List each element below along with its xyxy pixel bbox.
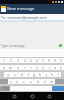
button[interactable]: u — [40, 65, 46, 70]
button[interactable]: Recent apps — [46, 93, 53, 100]
button[interactable]: 6 — [34, 58, 40, 63]
button[interactable]: e — [14, 65, 21, 70]
button[interactable]: a — [4, 72, 11, 77]
staticText: 6 — [36, 59, 38, 63]
staticText: m — [50, 80, 53, 84]
button[interactable]: h — [37, 72, 43, 77]
staticText: r — [24, 66, 26, 70]
button[interactable]: n — [41, 79, 48, 84]
button[interactable]: z — [8, 79, 14, 84]
staticText: a — [7, 73, 9, 77]
staticText: h — [39, 73, 41, 77]
staticText: i — [49, 66, 50, 70]
button[interactable]: k — [49, 72, 55, 77]
staticText: o — [54, 66, 56, 70]
button[interactable]: , — [10, 86, 16, 91]
button[interactable]: 1 — [0, 58, 7, 63]
button[interactable]: 5 — [28, 58, 34, 63]
staticText: y — [36, 66, 38, 70]
button[interactable]: s — [11, 72, 18, 77]
button[interactable]: Home — [29, 93, 36, 100]
button[interactable]: Send — [59, 44, 62, 47]
staticText: . — [49, 87, 50, 91]
button[interactable]: o — [52, 65, 58, 70]
button[interactable]: 4 — [21, 58, 28, 63]
staticText: 5 — [30, 59, 32, 63]
staticText: q — [3, 66, 5, 70]
button[interactable]: y — [34, 65, 40, 70]
button[interactable]: j — [43, 72, 49, 77]
staticText: u — [42, 66, 44, 70]
button[interactable]: f — [25, 72, 31, 77]
staticText: New message — [7, 6, 35, 12]
button[interactable]: d — [18, 72, 25, 77]
staticText: l — [58, 73, 59, 77]
button[interactable]: t — [28, 65, 34, 70]
staticText: 4 — [24, 59, 26, 63]
button[interactable]: 8 — [46, 58, 52, 63]
staticText: w — [9, 66, 12, 70]
staticText: n — [44, 80, 46, 84]
staticText: t — [30, 66, 32, 70]
staticText: z — [10, 80, 12, 84]
staticText: d — [21, 73, 23, 77]
button[interactable]: 9 — [52, 58, 58, 63]
button[interactable]: ?123 — [0, 86, 10, 91]
button[interactable]: v — [27, 79, 34, 84]
staticText: c — [23, 80, 25, 84]
staticText: e — [17, 66, 19, 70]
staticText: To: someone@example.com — [1, 15, 47, 20]
button[interactable]: 7 — [40, 58, 46, 63]
button[interactable]: w — [7, 65, 14, 70]
staticText: b — [37, 80, 39, 84]
staticText: 2 — [10, 59, 12, 63]
staticText: x — [16, 80, 18, 84]
staticText: 8 — [48, 59, 50, 63]
staticText: j — [46, 73, 47, 77]
staticText: 0 — [60, 59, 62, 63]
button[interactable]: x — [14, 79, 20, 84]
staticText: p — [60, 66, 62, 70]
staticText: 7 — [42, 59, 44, 63]
button[interactable]: 3 — [14, 58, 21, 63]
button[interactable]: . — [46, 86, 52, 91]
staticText: g — [33, 73, 35, 77]
button[interactable]: Back — [11, 93, 18, 100]
button[interactable]: g — [31, 72, 37, 77]
button[interactable]: Key — [52, 86, 64, 91]
button[interactable]: p — [58, 65, 64, 70]
staticText: 9 — [54, 59, 56, 63]
staticText: Type a message — [1, 44, 25, 48]
button[interactable]: Mail — [0, 4, 64, 14]
button[interactable]: r — [21, 65, 28, 70]
button[interactable]: i — [46, 65, 52, 70]
button[interactable]: c — [20, 79, 27, 84]
staticText: s — [14, 73, 16, 77]
staticText: ?123 — [2, 87, 9, 91]
button[interactable]: 0 — [58, 58, 64, 63]
staticText: k — [51, 73, 53, 77]
staticText: 3 — [17, 59, 19, 63]
staticText: f — [28, 73, 29, 77]
staticText: 1 — [3, 59, 5, 63]
button[interactable]: q — [0, 65, 7, 70]
staticText: , — [13, 87, 14, 91]
button[interactable]: 2 — [7, 58, 14, 63]
button[interactable]: b — [34, 79, 41, 84]
staticText: v — [30, 80, 32, 84]
other: Mail — [1, 6, 6, 12]
button[interactable]: m — [48, 79, 55, 84]
button[interactable]: l — [55, 72, 61, 77]
